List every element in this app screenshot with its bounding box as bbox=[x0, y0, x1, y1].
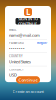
staticText: SIGN IN TO CONTINUE bbox=[18, 16, 38, 26]
staticText: L bbox=[26, 7, 30, 17]
staticText: Forgot? bbox=[37, 41, 47, 45]
staticText: name@mail.com bbox=[9, 32, 40, 38]
staticText: COUNTRY bbox=[9, 54, 23, 58]
button[interactable]: Continue bbox=[16, 76, 40, 84]
staticText: Create an account bbox=[12, 89, 43, 94]
button[interactable]: Create an account bbox=[12, 84, 43, 94]
staticText: EMAIL bbox=[9, 28, 16, 31]
staticText: Continue bbox=[18, 77, 37, 83]
staticText: •••••••• bbox=[9, 46, 25, 51]
staticText: USD bbox=[9, 72, 17, 78]
staticText: CURRENCY bbox=[9, 68, 24, 71]
staticText: PASSWORD bbox=[9, 41, 24, 45]
staticText: United States bbox=[9, 59, 31, 64]
